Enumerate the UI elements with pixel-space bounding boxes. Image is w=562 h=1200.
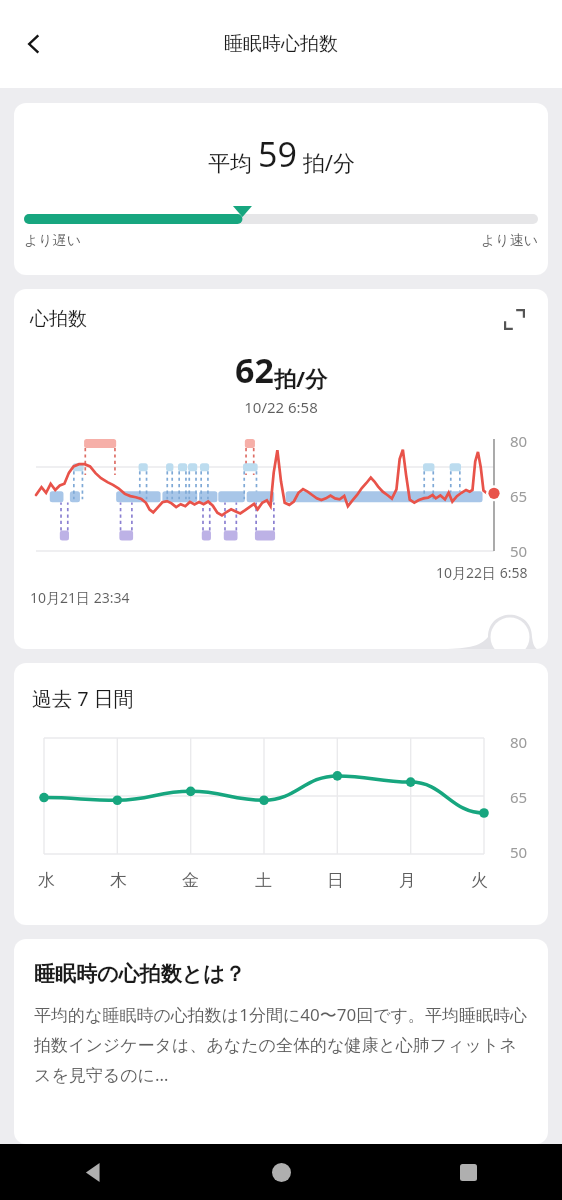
staticText: 睡眠時の心拍数とは？ bbox=[34, 961, 246, 987]
staticText: 10月22日 6:58 bbox=[436, 563, 528, 582]
button[interactable]: Back bbox=[0, 1144, 187, 1200]
staticText: 50 bbox=[510, 541, 528, 561]
staticText: 金 bbox=[182, 870, 199, 891]
staticText: 睡眠時心拍数 bbox=[224, 32, 338, 56]
staticText: 65 bbox=[510, 486, 528, 506]
staticText: 65 bbox=[510, 787, 528, 807]
button[interactable]: 過去 7 日間 bbox=[14, 663, 548, 925]
button[interactable]: 平均 bbox=[14, 103, 548, 275]
button[interactable]: Back bbox=[6, 16, 62, 72]
staticText: 日 bbox=[327, 870, 344, 891]
staticText: 拍/分 bbox=[274, 363, 328, 393]
staticText: 水 bbox=[38, 870, 55, 891]
button[interactable]: 心拍数 bbox=[14, 289, 548, 649]
staticText: より遅い bbox=[24, 232, 81, 250]
staticText: 59 bbox=[258, 131, 297, 177]
staticText: 過去 7 日間 bbox=[32, 685, 134, 712]
staticText: 拍/分 bbox=[297, 147, 355, 177]
staticText: 平均的な睡眠時の心拍数は1分間に40〜70回です。平均睡眠時心拍数インジケータは… bbox=[34, 1003, 528, 1086]
staticText: 平均 bbox=[208, 147, 258, 177]
staticText: 月 bbox=[399, 870, 416, 891]
staticText: 木 bbox=[110, 870, 127, 891]
staticText: 心拍数 bbox=[30, 307, 87, 331]
button[interactable]: Home bbox=[188, 1144, 375, 1200]
staticText: 火 bbox=[471, 870, 488, 891]
staticText: 10月21日 23:34 bbox=[30, 588, 130, 607]
button[interactable]: Recent apps bbox=[375, 1144, 562, 1200]
staticText: 62 bbox=[235, 347, 274, 393]
button[interactable]: Expand chart bbox=[496, 301, 532, 337]
staticText: 10/22 6:58 bbox=[14, 397, 548, 417]
staticText: 50 bbox=[510, 842, 528, 862]
staticText: より速い bbox=[481, 232, 538, 250]
staticText: 土 bbox=[255, 870, 272, 891]
staticText: 80 bbox=[510, 431, 528, 451]
button[interactable]: 睡眠時の心拍数とは？ bbox=[14, 939, 548, 1144]
staticText: 80 bbox=[510, 732, 528, 752]
